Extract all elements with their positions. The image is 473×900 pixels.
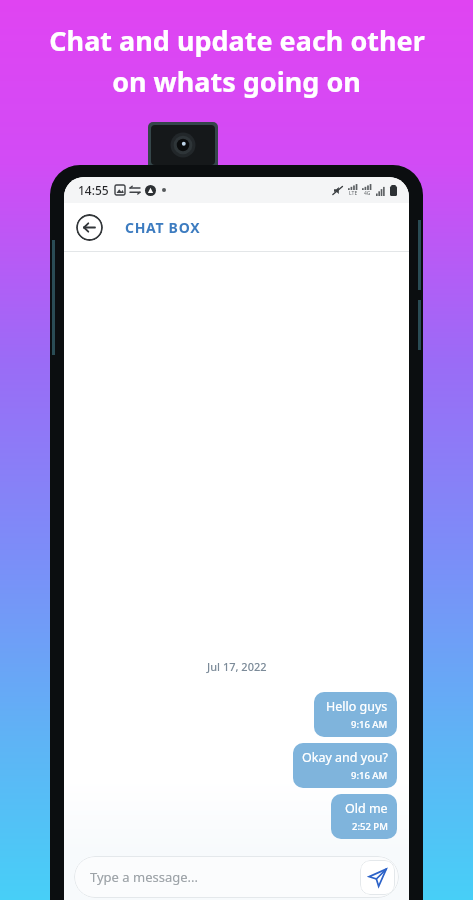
staticText: 2:52 PM: [352, 820, 388, 833]
staticText: Jul 17, 2022: [207, 659, 267, 674]
staticText: on whats going on: [112, 63, 361, 100]
button[interactable]: Hello guys: [314, 692, 397, 737]
staticText: 9:16 AM: [351, 769, 388, 782]
staticText: Old me: [345, 800, 388, 817]
staticText: Chat and update each other: [49, 22, 425, 59]
staticText: 4G: [364, 190, 371, 197]
staticText: Hello guys: [326, 698, 388, 715]
staticText: Okay and you?: [302, 749, 388, 766]
staticText: CHAT BOX: [125, 218, 201, 237]
button[interactable]: Send: [360, 860, 395, 895]
staticText: 9:16 AM: [351, 718, 388, 731]
button[interactable]: Old me: [331, 794, 397, 839]
button[interactable]: Okay and you?: [293, 743, 397, 788]
button[interactable]: Type a message...: [74, 856, 360, 898]
button[interactable]: Back: [76, 214, 103, 241]
staticText: 14:55: [78, 182, 109, 198]
staticText: LTE: [349, 190, 358, 197]
staticText: Type a message...: [90, 868, 198, 886]
